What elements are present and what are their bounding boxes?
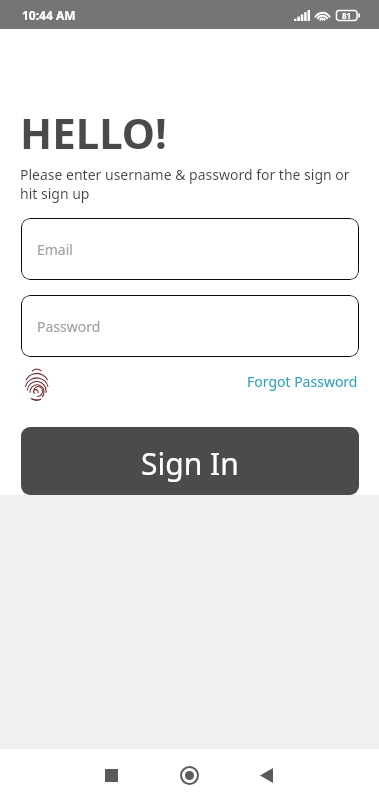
button[interactable]: Email — [21, 218, 359, 280]
button[interactable]: Back — [242, 749, 290, 800]
staticText: HELLO! — [20, 104, 167, 161]
staticText: Password — [37, 317, 101, 336]
staticText: Sign In — [141, 443, 239, 484]
button[interactable]: Fingerprint login — [17, 363, 57, 403]
button[interactable]: Recent apps — [87, 749, 135, 800]
button[interactable]: Home — [165, 749, 213, 800]
staticText: Email — [37, 240, 73, 259]
staticText: Forgot Password — [247, 372, 358, 391]
staticText: Please enter username & password for the… — [20, 165, 350, 203]
button[interactable]: Password — [21, 295, 359, 357]
button[interactable]: Forgot Password — [240, 366, 358, 396]
staticText: 10:44 AM — [22, 7, 76, 23]
staticText: 81 — [342, 10, 352, 21]
button[interactable]: Sign In — [21, 427, 359, 495]
